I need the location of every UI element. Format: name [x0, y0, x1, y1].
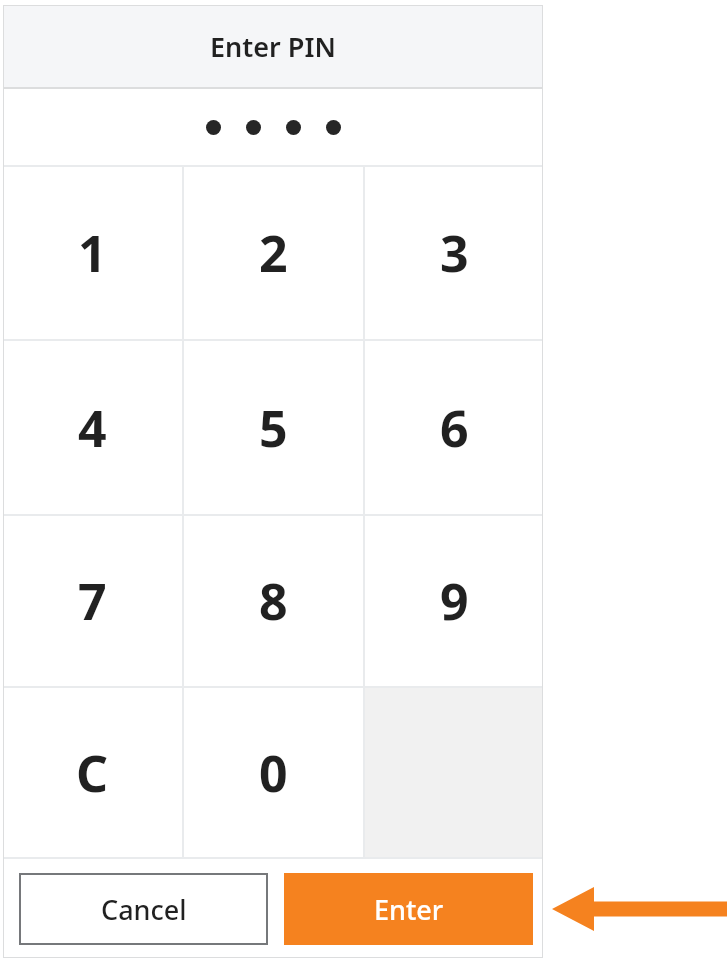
button[interactable]: 9 [365, 516, 543, 686]
button[interactable]: 6 [365, 341, 543, 514]
staticText: 0 [259, 739, 288, 807]
button[interactable]: 4 [3, 341, 182, 514]
staticText: 3 [440, 219, 469, 287]
staticText: Cancel [101, 891, 187, 928]
staticText: 8 [259, 567, 288, 635]
button[interactable]: 3 [365, 167, 543, 339]
staticText: 6 [440, 394, 469, 462]
staticText: Enter PIN [210, 28, 336, 65]
staticText: 4 [78, 394, 107, 462]
button[interactable]: 1 [3, 167, 182, 339]
staticText: 5 [259, 394, 288, 462]
other: Annotation arrow pointing to Enter butto… [0, 0, 727, 964]
button[interactable]: Enter [284, 873, 533, 945]
button[interactable]: 7 [3, 516, 182, 686]
button[interactable]: 2 [184, 167, 363, 339]
staticText: 2 [259, 219, 288, 287]
staticText: Enter [374, 891, 444, 928]
button[interactable]: 0 [184, 688, 363, 857]
staticText: 1 [78, 219, 107, 287]
button[interactable]: Cancel [19, 873, 268, 945]
button[interactable]: 8 [184, 516, 363, 686]
staticText: 9 [440, 567, 469, 635]
staticText: 7 [78, 567, 107, 635]
button[interactable]: C [3, 688, 182, 857]
button[interactable]: 5 [184, 341, 363, 514]
staticText: C [76, 739, 109, 807]
